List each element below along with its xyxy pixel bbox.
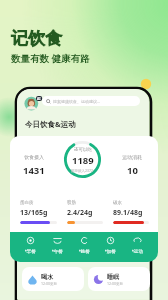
staticText: 脂肪 [67, 200, 76, 206]
staticText: 1189 [72, 154, 94, 167]
staticText: 12:00更新 [41, 281, 57, 286]
button[interactable]: •午餐 [51, 236, 64, 254]
button[interactable]: 搜索健康饮食、运动建议… [42, 96, 140, 106]
staticText: 数量有数 健康有路 [11, 52, 90, 65]
staticText: 推荐摄入2372 [71, 168, 94, 173]
staticText: 饮食摄入 [24, 154, 44, 160]
button[interactable]: •加餐 [104, 236, 117, 254]
staticText: 记饮食 [11, 28, 62, 49]
button[interactable]: Profile [24, 95, 43, 114]
staticText: 搜索健康饮食、运动建议… [53, 99, 101, 104]
staticText: •早餐 [25, 248, 36, 254]
staticText: 今日饮食&运动 [25, 119, 76, 129]
staticText: 2.4/24g [67, 208, 93, 218]
staticText: •晚餐 [79, 248, 90, 254]
button[interactable]: 睡眠 [88, 267, 150, 291]
staticText: 89.1/48g [113, 208, 143, 218]
staticText: •午餐 [52, 248, 63, 254]
staticText: 睡眠 [107, 273, 119, 281]
button[interactable]: •运动 [131, 236, 144, 254]
staticText: 运动消耗 [122, 154, 142, 160]
staticText: 还可以吃 [74, 147, 92, 153]
staticText: 蛋白质 [20, 200, 34, 206]
button[interactable]: •晚餐 [78, 236, 91, 254]
staticText: 1431 [23, 164, 45, 177]
staticText: 12:00更新 [107, 281, 123, 286]
staticText: 10 [127, 164, 138, 177]
button[interactable]: 喝水 [22, 267, 84, 291]
staticText: •运动 [132, 248, 143, 254]
staticText: 13/165g [20, 208, 48, 218]
staticText: 喝水 [41, 273, 53, 281]
staticText: 碳水 [113, 200, 122, 206]
button[interactable]: •早餐 [24, 236, 37, 254]
staticText: •加餐 [105, 248, 116, 254]
staticText: AI [37, 96, 41, 100]
